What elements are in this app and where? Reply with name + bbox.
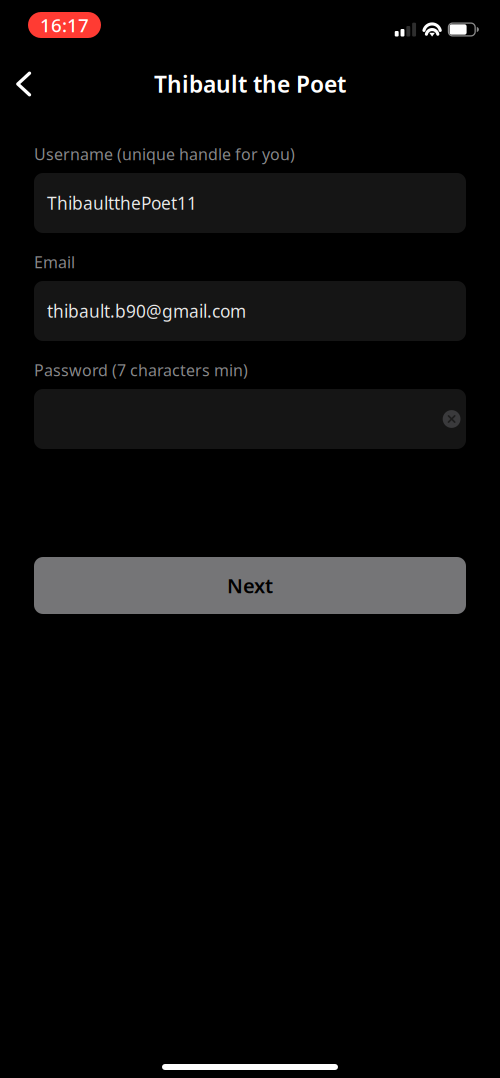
button[interactable]: Next	[34, 557, 466, 614]
staticText: Next	[227, 572, 273, 599]
button[interactable]: Clear text	[434, 401, 469, 437]
staticText: Email	[34, 251, 75, 273]
staticText: Thibault the Poet	[154, 69, 346, 99]
staticText: thibault.b90@gmail.com	[47, 299, 246, 322]
staticText: Password (7 characters min)	[34, 359, 248, 381]
staticText: 16:17	[40, 13, 89, 37]
staticText: Username (unique handle for you)	[34, 143, 295, 165]
button[interactable]: Back	[0, 61, 47, 107]
staticText: ThibaultthePoet11	[47, 191, 197, 214]
